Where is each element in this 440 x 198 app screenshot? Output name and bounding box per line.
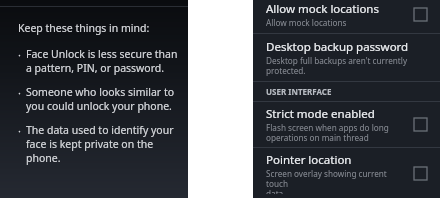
staticText: ·: [18, 47, 21, 62]
button[interactable]: Toggle setting: [413, 117, 428, 132]
button[interactable]: Toggle setting: [413, 166, 428, 181]
button[interactable]: Toggle setting: [413, 7, 428, 22]
staticText: Someone who looks similar to you could u…: [26, 85, 175, 113]
staticText: Allow mock locations: [266, 17, 347, 28]
button[interactable]: Strict mode enabled: [253, 102, 440, 147]
button[interactable]: Allow mock locations: [253, 0, 440, 33]
staticText: The data used to identify your face is k…: [26, 123, 180, 165]
staticText: Desktop backup password: [266, 39, 409, 55]
staticText: Desktop full backups aren't currently pr…: [266, 55, 428, 76]
staticText: Strict mode enabled: [266, 106, 375, 122]
staticText: USER INTERFACE: [266, 86, 332, 97]
staticText: ·: [18, 123, 21, 138]
staticText: ·: [18, 85, 21, 100]
button[interactable]: Desktop backup password: [253, 34, 440, 81]
staticText: Flash screen when apps do long operation…: [266, 122, 389, 143]
staticText: Screen overlay showing current touch dat…: [266, 168, 407, 194]
staticText: Pointer location: [266, 152, 352, 168]
staticText: Allow mock locations: [266, 1, 379, 17]
staticText: Face Unlock is less secure than a patter…: [26, 47, 178, 75]
button[interactable]: Pointer location: [253, 148, 440, 198]
staticText: Keep these things in mind:: [18, 21, 150, 35]
